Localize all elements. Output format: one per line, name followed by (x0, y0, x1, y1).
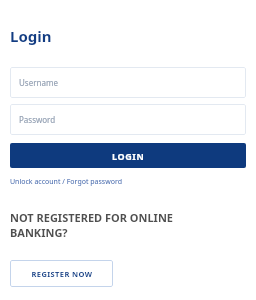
staticText: Unlock account / Forgot password (10, 177, 123, 187)
staticText: REGISTER NOW (31, 269, 93, 279)
button[interactable]: REGISTER NOW (10, 260, 113, 287)
button[interactable]: LOGIN (10, 143, 246, 168)
staticText: Username (19, 77, 58, 88)
staticText: Password (19, 114, 56, 125)
button[interactable]: Password (10, 104, 246, 135)
button[interactable]: Username (10, 67, 246, 98)
staticText: NOT REGISTERED FOR ONLINE BANKING? (10, 210, 173, 240)
button[interactable]: Unlock account / Forgot password (10, 177, 123, 187)
staticText: Login (10, 26, 52, 46)
staticText: LOGIN (112, 150, 145, 162)
